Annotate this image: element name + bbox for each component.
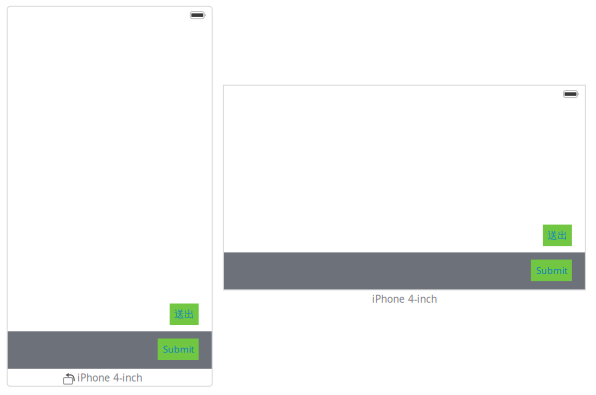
button[interactable]: Rotate device orientation bbox=[63, 368, 75, 386]
staticText: iPhone 4-inch bbox=[372, 292, 437, 306]
staticText: iPhone 4-inch bbox=[77, 371, 142, 384]
button[interactable]: iPhone 4-inch bbox=[77, 369, 143, 386]
staticText: 送出 bbox=[174, 308, 194, 321]
button[interactable]: Submit bbox=[158, 338, 199, 360]
staticText: 送出 bbox=[547, 229, 567, 242]
staticText: Submit bbox=[163, 343, 194, 356]
button[interactable]: iPhone 4-inch bbox=[223, 290, 585, 308]
staticText: Submit bbox=[536, 264, 567, 277]
button[interactable]: Submit bbox=[531, 260, 572, 281]
button[interactable]: 送出 bbox=[170, 303, 199, 325]
button[interactable]: 送出 bbox=[543, 225, 572, 246]
